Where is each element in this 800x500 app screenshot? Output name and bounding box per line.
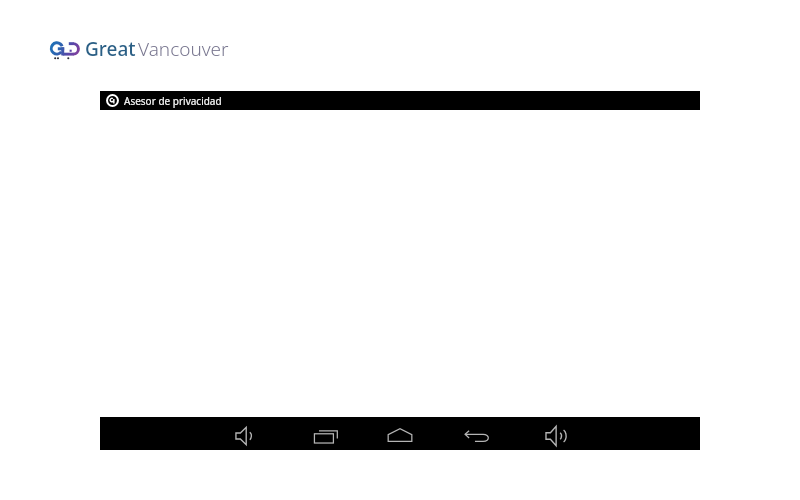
button[interactable]: Asesor de privacidad bbox=[100, 91, 700, 110]
staticText: Vancouver bbox=[138, 36, 229, 62]
staticText: Great bbox=[85, 36, 136, 62]
button[interactable]: Volume down bbox=[223, 417, 265, 450]
button[interactable]: Volume up bbox=[535, 417, 577, 450]
button[interactable]: Recent apps bbox=[305, 417, 347, 450]
button[interactable]: Great Vancouver home bbox=[48, 36, 230, 64]
button[interactable]: Back bbox=[455, 417, 497, 450]
staticText: Asesor de privacidad bbox=[124, 94, 222, 108]
button[interactable]: Home bbox=[379, 417, 421, 450]
